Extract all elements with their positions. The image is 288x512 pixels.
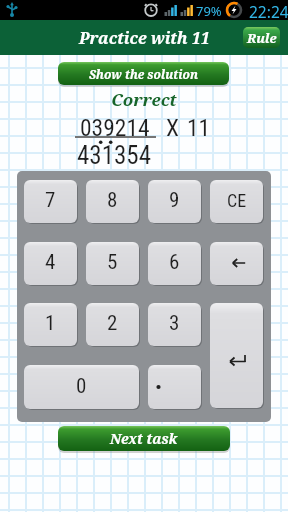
button[interactable] [210,303,263,408]
staticText: 9 [169,188,180,213]
button[interactable]: 3 [148,303,201,346]
button[interactable]: 6 [148,242,201,285]
staticText: 0 [76,374,87,399]
staticText: 7 [45,188,56,213]
button[interactable]: 8 [86,180,139,223]
staticText: 1 [45,311,56,336]
button[interactable] [210,242,263,285]
button[interactable]: 9 [148,180,201,223]
staticText: X [166,114,179,142]
staticText: Practice with 11 [79,27,210,49]
staticText: Correct [0,88,288,110]
staticText: 22:24 [249,1,288,21]
button[interactable]: Next task [58,426,230,451]
button[interactable]: Show the solution [58,62,229,85]
button[interactable]: CE [210,180,263,223]
staticText: 3 [169,311,180,336]
staticText: 039214 [80,114,150,142]
button[interactable]: 7 [24,180,77,223]
staticText: 5 [107,250,118,275]
button[interactable]: 1 [24,303,77,346]
staticText: 431354 [77,141,152,170]
button[interactable]: Rule [243,27,280,48]
button[interactable]: 5 [86,242,139,285]
button[interactable]: 4 [24,242,77,285]
staticText: 2 [107,311,118,336]
button[interactable] [148,365,201,409]
button[interactable]: 2 [86,303,139,346]
staticText: Rule [247,29,277,47]
staticText: 4 [45,250,56,275]
staticText: 6 [169,250,180,275]
staticText: Next task [110,429,178,448]
staticText: 8 [107,188,118,213]
staticText: Show the solution [89,66,198,82]
staticText: 11 [187,114,211,142]
staticText: 79% [196,2,222,20]
staticText: CE [227,190,247,211]
button[interactable]: 0 [24,365,139,409]
